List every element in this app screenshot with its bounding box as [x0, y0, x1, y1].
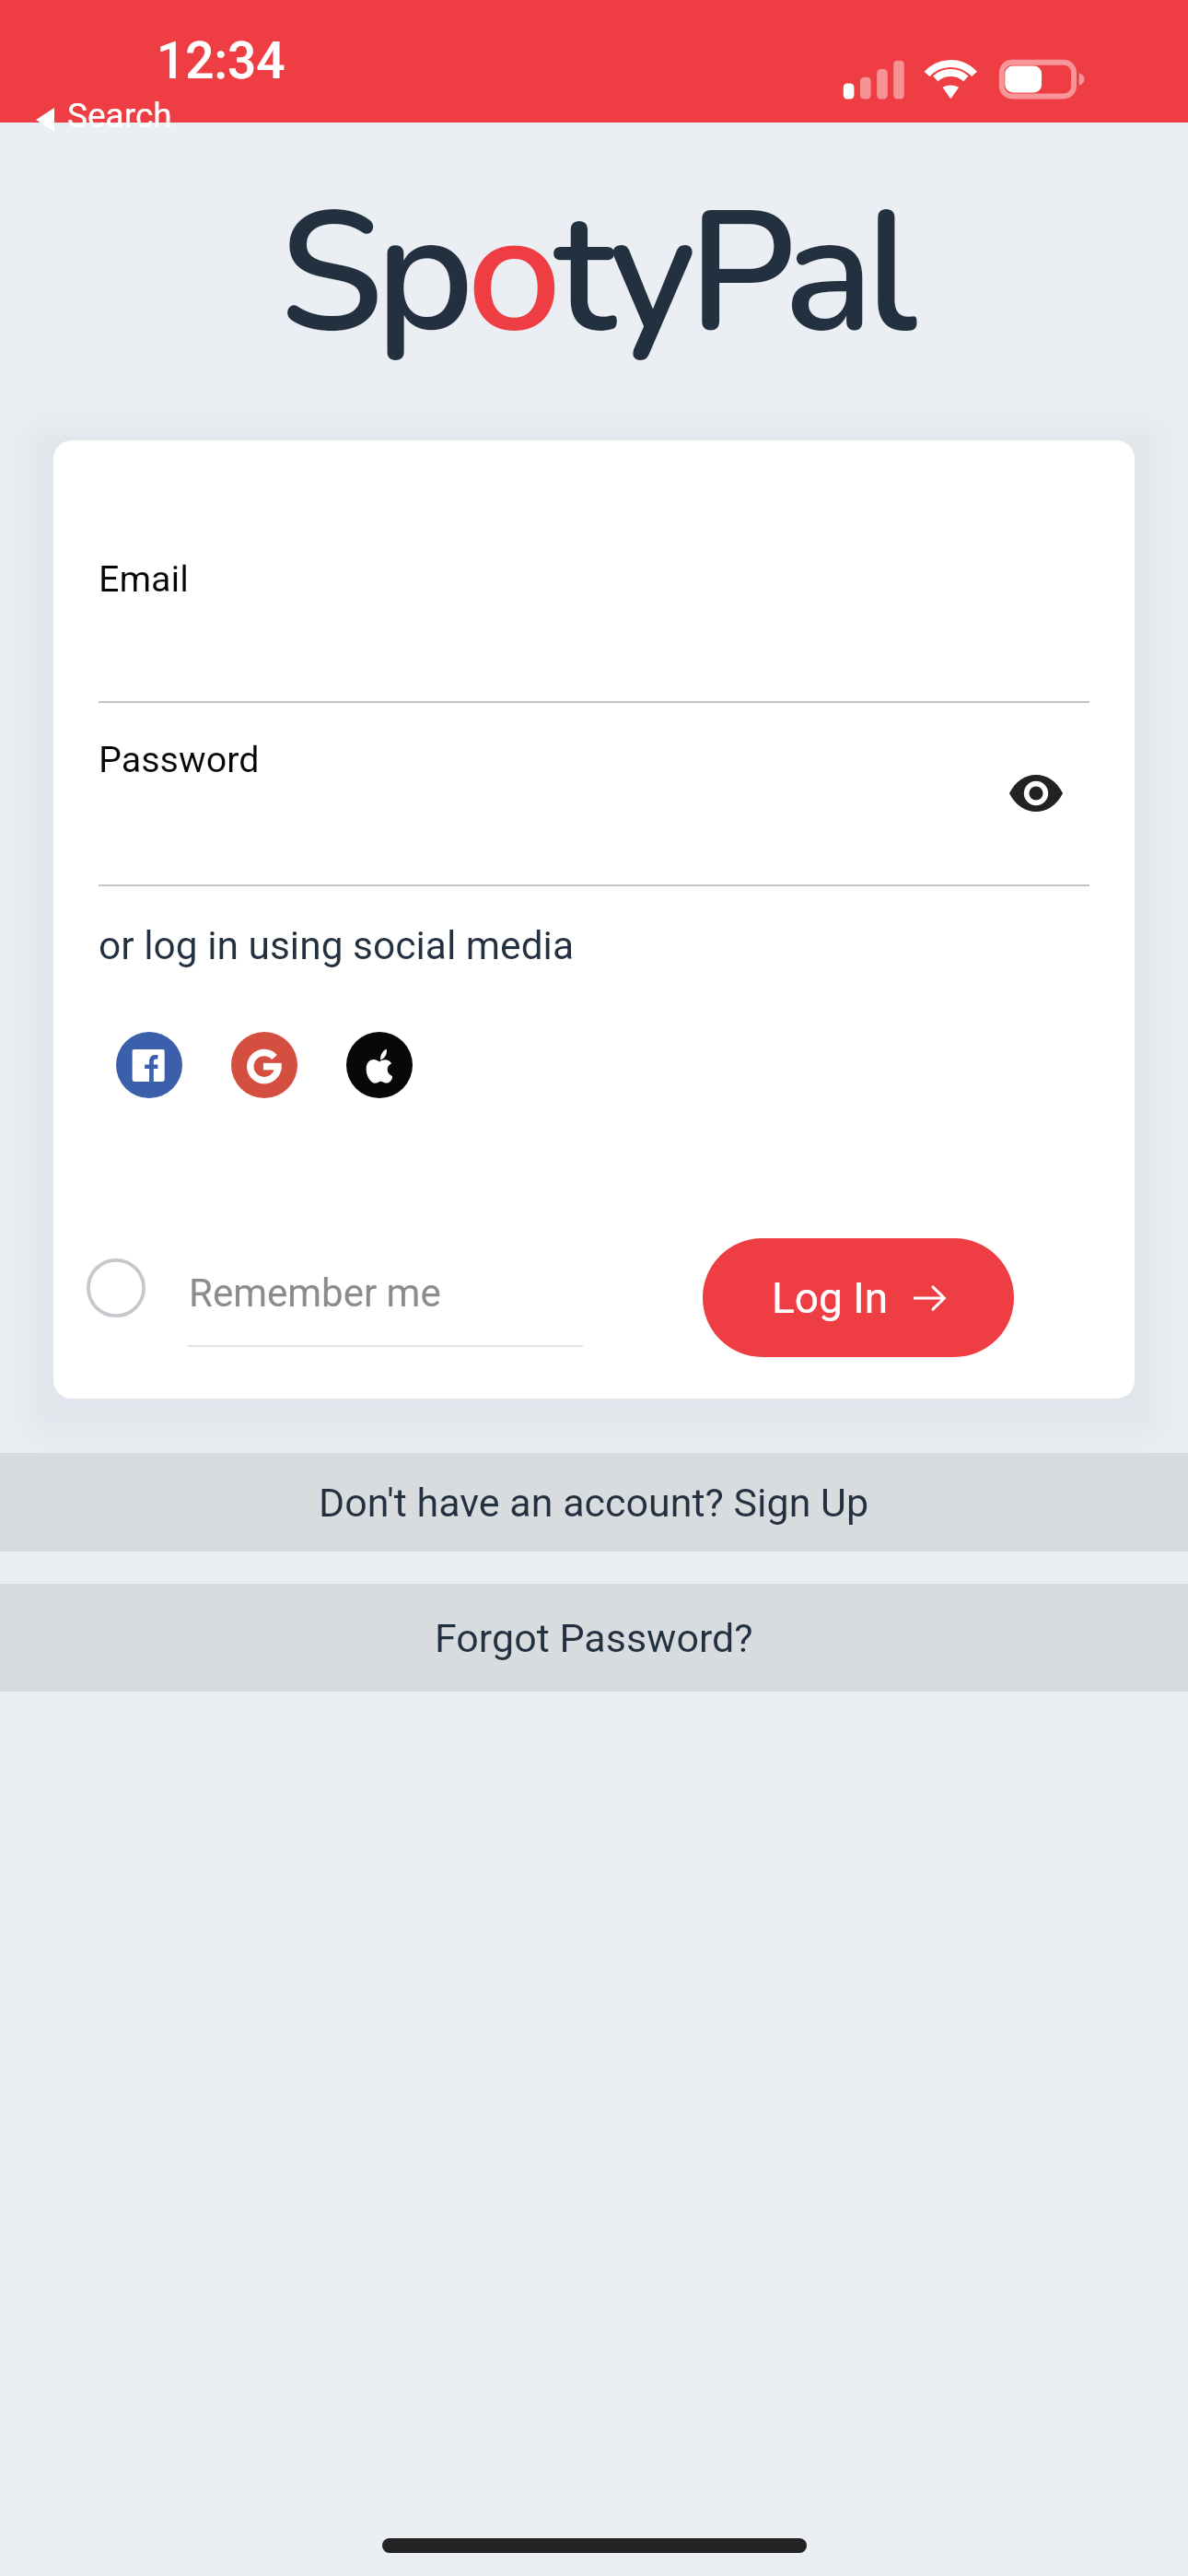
staticText: Don't have an account? Sign Up — [319, 1480, 869, 1526]
button[interactable]: Sign in with Facebook — [116, 1032, 182, 1098]
button[interactable]: Sign in with Google — [231, 1032, 297, 1098]
button[interactable]: Remember me — [74, 1246, 158, 1330]
staticText: Email — [99, 557, 189, 600]
staticText: Log In — [772, 1273, 889, 1323]
button[interactable]: Don't have an account? Sign Up — [0, 1453, 1188, 1551]
staticText: Password — [99, 738, 260, 780]
staticText: o — [467, 159, 554, 388]
staticText: Sp — [279, 159, 467, 388]
staticText: or log in using social media — [99, 923, 575, 969]
button[interactable]: Forgot Password? — [0, 1584, 1188, 1692]
button[interactable]: Log In — [703, 1238, 1014, 1357]
button[interactable]: Sign in with Apple — [346, 1032, 413, 1098]
button[interactable]: Show password — [1004, 765, 1068, 822]
staticText: 12:34 — [157, 31, 285, 90]
staticText: Forgot Password? — [435, 1615, 753, 1661]
staticText: tyPal — [554, 159, 910, 388]
button[interactable]: Search — [36, 96, 172, 135]
staticText: Remember me — [189, 1270, 441, 1316]
staticText: Search — [67, 96, 172, 135]
